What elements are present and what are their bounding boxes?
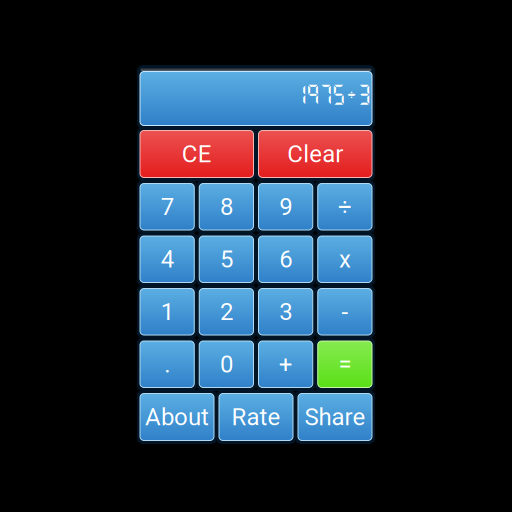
- button[interactable]: Display showing 1975÷3: [139, 68, 372, 126]
- button[interactable]: CE: [139, 130, 254, 178]
- button[interactable]: =: [317, 340, 372, 388]
- staticText: 6: [279, 245, 292, 273]
- button[interactable]: Rate: [218, 393, 293, 441]
- button[interactable]: 3: [258, 288, 313, 335]
- button[interactable]: Clear: [258, 130, 372, 178]
- button[interactable]: 4: [139, 235, 195, 283]
- button[interactable]: 7: [139, 183, 195, 230]
- staticText: 1: [161, 298, 174, 326]
- staticText: Share: [304, 403, 365, 431]
- button[interactable]: .: [139, 340, 195, 388]
- button[interactable]: 0: [199, 340, 254, 388]
- staticText: 4: [161, 245, 174, 273]
- button[interactable]: Share: [297, 393, 372, 441]
- staticText: About: [145, 403, 209, 431]
- staticText: ÷: [338, 193, 352, 221]
- button[interactable]: 5: [199, 235, 254, 283]
- staticText: Clear: [287, 140, 343, 168]
- button[interactable]: -: [317, 288, 372, 335]
- staticText: 2: [220, 298, 233, 326]
- staticText: 5: [220, 245, 233, 273]
- staticText: 7: [161, 193, 174, 221]
- button[interactable]: 8: [199, 183, 254, 230]
- staticText: 0: [220, 350, 233, 378]
- button[interactable]: ÷: [317, 183, 372, 230]
- staticText: =: [338, 350, 351, 378]
- button[interactable]: +: [258, 340, 313, 388]
- staticText: 9: [279, 193, 292, 221]
- button[interactable]: 2: [199, 288, 254, 335]
- button[interactable]: About: [139, 393, 214, 441]
- staticText: CE: [182, 140, 212, 168]
- staticText: -: [341, 298, 348, 326]
- staticText: Rate: [231, 403, 280, 431]
- staticText: x: [339, 245, 351, 273]
- staticText: 1975÷3: [292, 82, 371, 107]
- staticText: .: [164, 350, 170, 378]
- staticText: 8: [220, 193, 233, 221]
- button[interactable]: x: [317, 235, 372, 283]
- button[interactable]: 1: [139, 288, 195, 335]
- button[interactable]: 6: [258, 235, 313, 283]
- staticText: +: [279, 350, 293, 378]
- staticText: 3: [279, 298, 292, 326]
- button[interactable]: 9: [258, 183, 313, 230]
